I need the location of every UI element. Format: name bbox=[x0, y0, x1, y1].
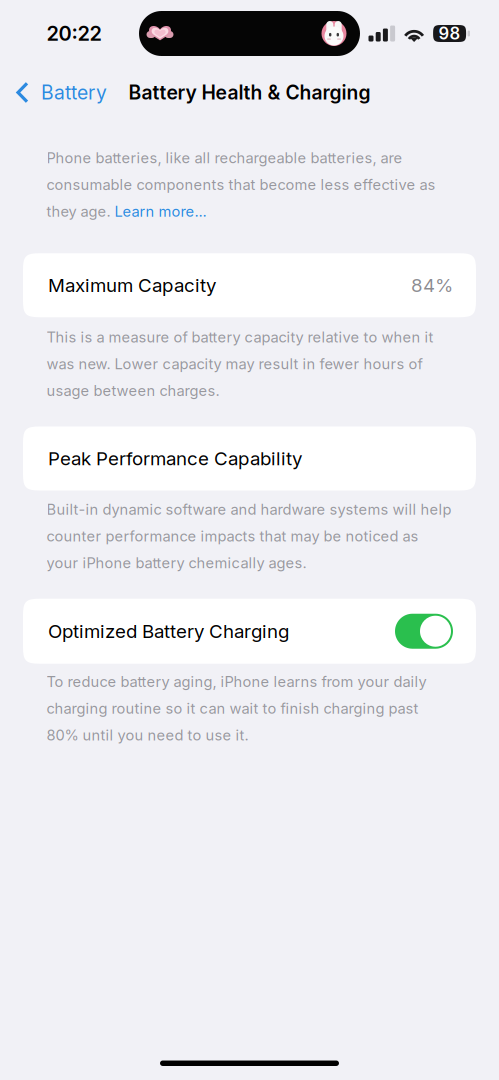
staticText: Battery Health & Charging bbox=[128, 81, 370, 104]
staticText: To reduce battery aging, iPhone learns f… bbox=[46, 673, 426, 744]
button[interactable]: Optimized Battery Charging bbox=[0, 599, 499, 664]
staticText: Battery bbox=[41, 81, 107, 104]
staticText: Optimized Battery Charging bbox=[48, 620, 289, 642]
button[interactable]: Maximum Capacity bbox=[0, 253, 499, 317]
staticText: 20:22 bbox=[46, 21, 101, 46]
staticText: Built-in dynamic software and hardware s… bbox=[46, 500, 451, 572]
staticText: Maximum Capacity bbox=[48, 274, 216, 296]
staticText: This is a measure of battery capacity re… bbox=[46, 328, 433, 399]
staticText: 84% bbox=[411, 274, 453, 296]
staticText: Phone batteries, like all rechargeable b… bbox=[46, 149, 435, 220]
staticText: 98 bbox=[439, 23, 461, 44]
button[interactable]: Battery bbox=[0, 72, 107, 113]
staticText: Peak Performance Capability bbox=[48, 447, 302, 470]
button[interactable]: Peak Performance Capability bbox=[0, 426, 499, 490]
